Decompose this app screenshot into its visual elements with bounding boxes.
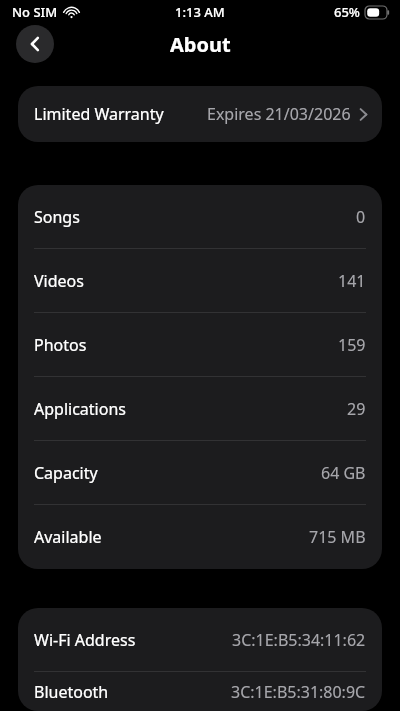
staticText: Applications	[34, 398, 126, 420]
button[interactable]: Videos	[18, 249, 382, 313]
button[interactable]: Back	[16, 25, 54, 63]
button[interactable]: Applications	[18, 377, 382, 441]
staticText: 3C:1E:B5:34:11:62	[232, 629, 366, 651]
staticText: Songs	[34, 206, 80, 228]
button[interactable]: Limited Warranty	[18, 86, 382, 142]
staticText: About	[170, 31, 231, 58]
staticText: No SIM	[12, 3, 58, 21]
button[interactable]: Songs	[18, 185, 382, 249]
staticText: 159	[338, 334, 366, 356]
staticText: Photos	[34, 334, 87, 356]
staticText: Available	[34, 526, 102, 548]
button[interactable]: Photos	[18, 313, 382, 377]
staticText: Bluetooth	[34, 681, 109, 703]
button[interactable]: Bluetooth	[18, 672, 382, 711]
staticText: Limited Warranty	[34, 103, 164, 125]
staticText: 29	[347, 398, 366, 420]
button[interactable]: Wi-Fi Address	[18, 608, 382, 672]
staticText: 65%	[334, 3, 360, 21]
staticText: Expires 21/03/2026	[207, 103, 351, 125]
button[interactable]: Available	[18, 505, 382, 569]
staticText: 141	[338, 270, 366, 292]
staticText: Capacity	[34, 462, 98, 484]
staticText: Videos	[34, 270, 84, 292]
staticText: Wi-Fi Address	[34, 629, 136, 651]
staticText: 0	[356, 206, 366, 228]
staticText: 64 GB	[321, 462, 366, 484]
staticText: 3C:1E:B5:31:80:9C	[231, 681, 366, 703]
staticText: 1:13 AM	[175, 3, 225, 21]
staticText: 715 MB	[309, 526, 366, 548]
button[interactable]: Capacity	[18, 441, 382, 505]
